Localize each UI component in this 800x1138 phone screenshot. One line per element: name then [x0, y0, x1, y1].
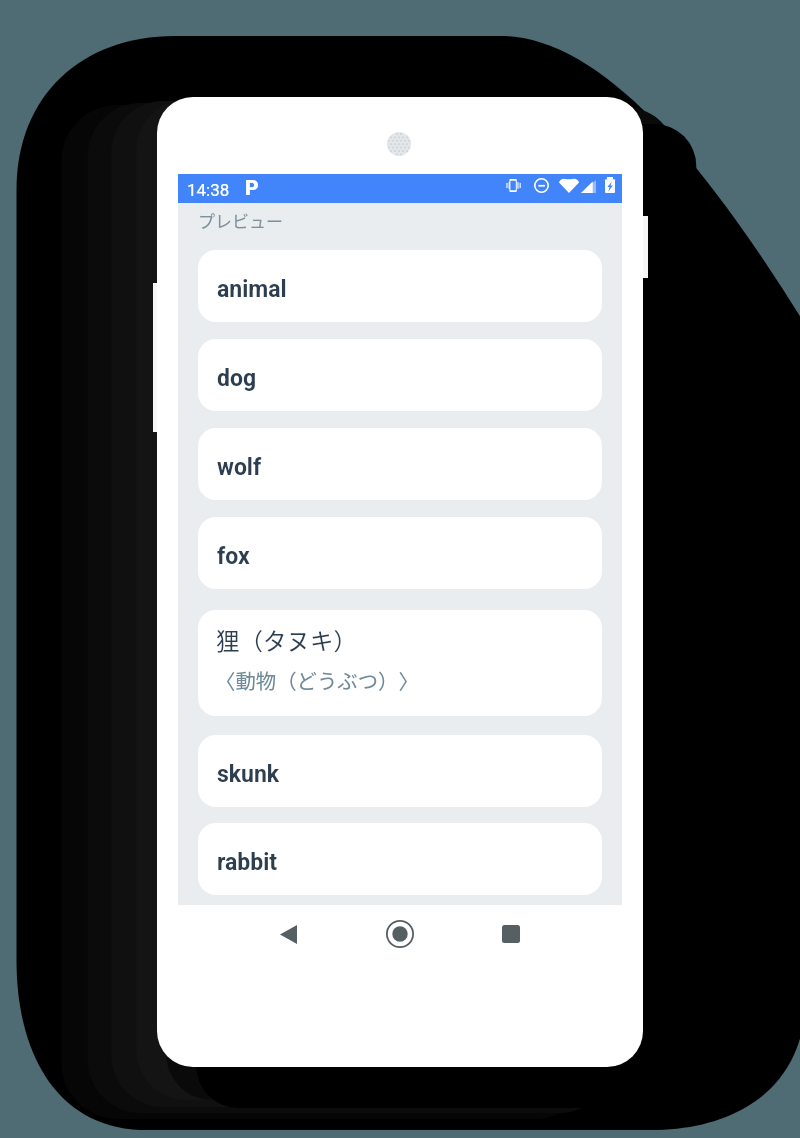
button[interactable]: fox [198, 517, 602, 589]
button[interactable]: 狸（タヌキ） [198, 610, 602, 716]
staticText: P [245, 176, 259, 201]
staticText: 14:38 [187, 180, 230, 200]
staticText: fox [217, 543, 250, 570]
button[interactable]: rabbit [198, 823, 602, 895]
staticText: skunk [217, 761, 280, 788]
staticText: 〈動物（どうぶつ）〉 [215, 665, 419, 695]
button[interactable]: dog [198, 339, 602, 411]
staticText: animal [217, 276, 287, 303]
button[interactable]: wolf [198, 428, 602, 500]
button[interactable]: animal [198, 250, 602, 322]
staticText: 狸（タヌキ） [216, 623, 357, 657]
button[interactable]: skunk [198, 735, 602, 807]
staticText: プレビュー [198, 208, 283, 233]
staticText: wolf [217, 454, 262, 481]
button[interactable]: Recents [483, 905, 539, 963]
staticText: rabbit [217, 849, 278, 876]
button[interactable]: Home [372, 905, 428, 963]
button[interactable]: Back [260, 905, 316, 963]
staticText: dog [217, 365, 257, 392]
